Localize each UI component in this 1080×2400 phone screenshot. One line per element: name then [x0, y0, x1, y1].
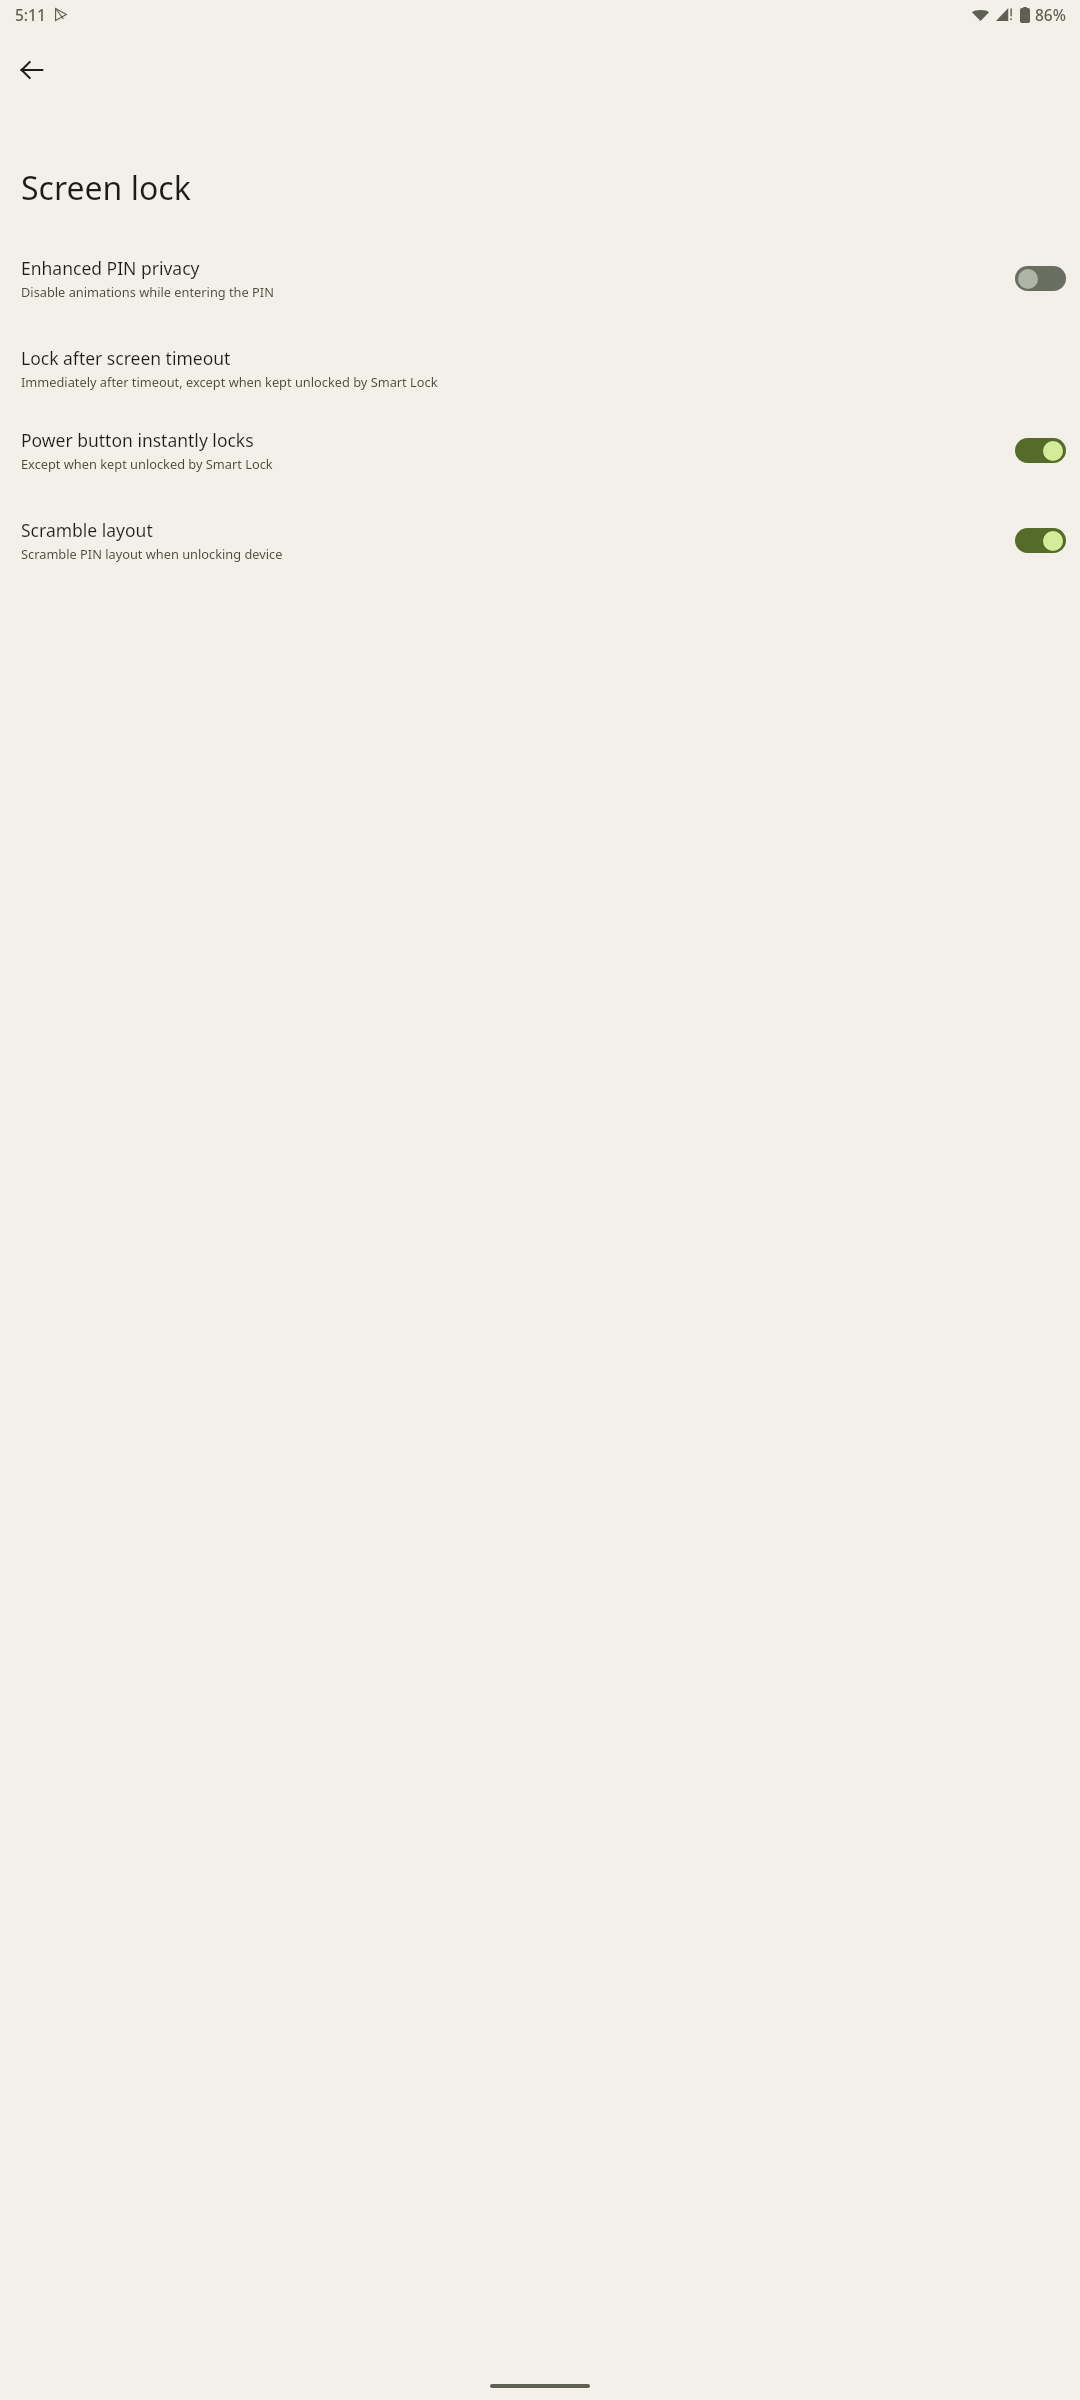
staticText: Lock after screen timeout [21, 346, 231, 370]
button[interactable]: Lock after screen timeout [0, 340, 1080, 396]
button[interactable]: Scramble layout [0, 512, 1080, 568]
staticText: Enhanced PIN privacy [21, 256, 200, 280]
staticText: Immediately after timeout, except when k… [21, 373, 438, 390]
button[interactable]: Enhanced PIN privacy [0, 250, 1080, 306]
staticText: Scramble layout [21, 518, 153, 542]
button[interactable]: Power button instantly locks [0, 422, 1080, 478]
button[interactable]: On [1015, 528, 1066, 553]
staticText: 5:11 [15, 4, 46, 25]
staticText: 86% [1035, 4, 1066, 25]
button[interactable]: On [1015, 438, 1066, 463]
staticText: Screen lock [21, 166, 191, 210]
staticText: Disable animations while entering the PI… [21, 283, 274, 300]
button[interactable]: Off [1015, 266, 1066, 291]
button[interactable]: Back [8, 46, 56, 94]
staticText: Scramble PIN layout when unlocking devic… [21, 545, 283, 562]
staticText: Power button instantly locks [21, 428, 254, 452]
staticText: Except when kept unlocked by Smart Lock [21, 455, 273, 472]
